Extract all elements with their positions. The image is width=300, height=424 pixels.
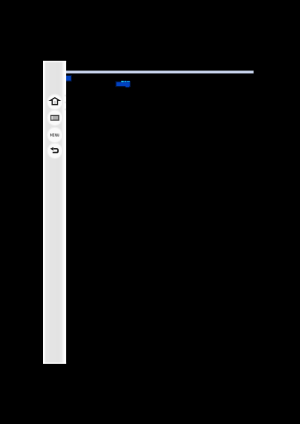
button[interactable]: Recent apps xyxy=(48,111,62,125)
button[interactable]: Menu xyxy=(48,128,62,142)
button[interactable]: Back xyxy=(48,144,62,158)
button[interactable]: Home xyxy=(48,95,62,109)
